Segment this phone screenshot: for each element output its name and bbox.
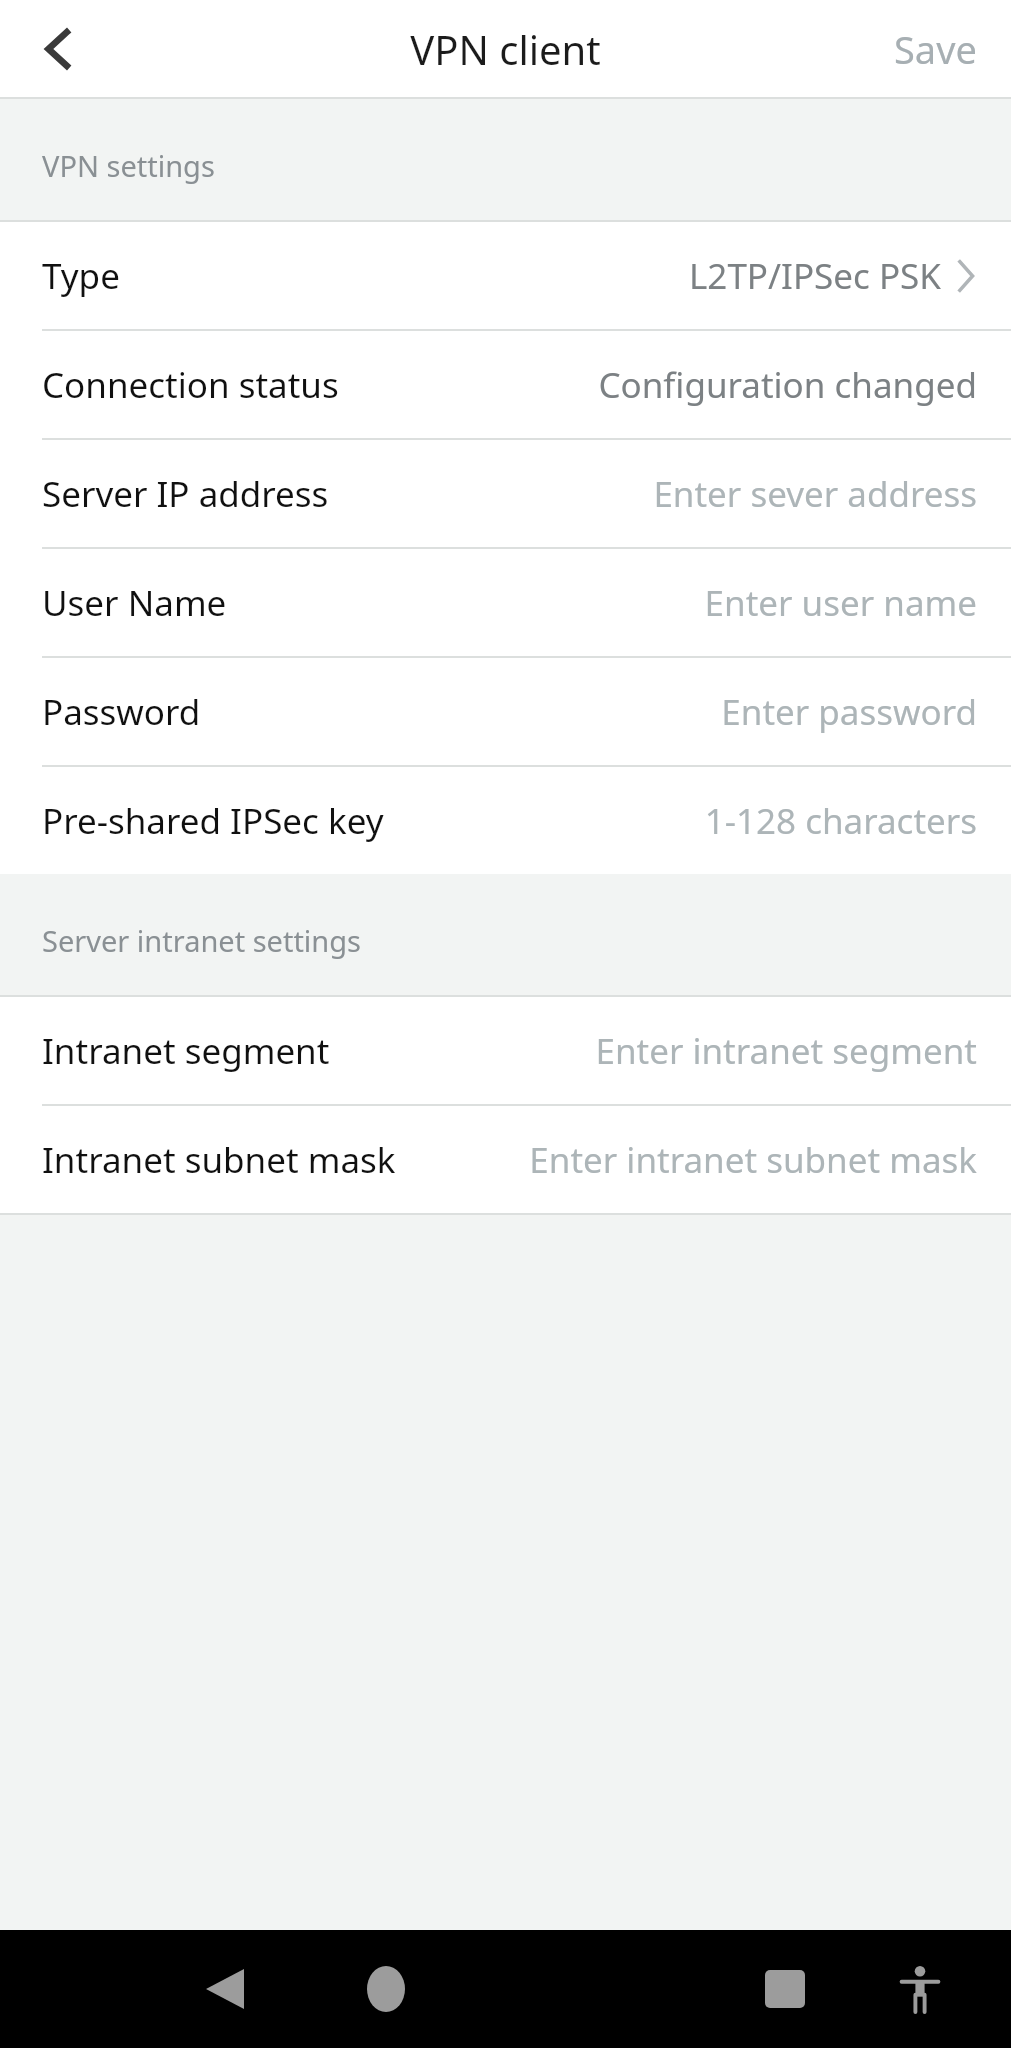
button[interactable]: Connection status <box>0 331 1011 438</box>
staticText: 1-128 characters <box>704 797 977 845</box>
staticText: Pre-shared IPSec key <box>42 797 384 845</box>
staticText: VPN settings <box>42 146 215 185</box>
staticText: Enter password <box>721 688 977 736</box>
button[interactable]: Intranet subnet mask <box>0 1106 1011 1213</box>
staticText: Enter intranet subnet mask <box>529 1136 977 1184</box>
button[interactable]: Password <box>0 658 1011 765</box>
staticText: Type <box>42 252 120 300</box>
staticText: Intranet subnet mask <box>42 1136 396 1184</box>
button[interactable]: Save <box>860 7 1011 91</box>
button[interactable]: Home <box>338 1941 434 2037</box>
button[interactable]: Recent apps <box>737 1941 833 2037</box>
staticText: Intranet segment <box>42 1027 330 1075</box>
staticText: User Name <box>42 579 227 627</box>
staticText: Enter sever address <box>653 470 977 518</box>
button[interactable]: Type <box>0 222 1011 329</box>
button[interactable]: User Name <box>0 549 1011 656</box>
button[interactable]: Accessibility <box>872 1941 968 2037</box>
button[interactable]: Pre-shared IPSec key <box>0 767 1011 874</box>
staticText: Server intranet settings <box>42 921 362 960</box>
staticText: Connection status <box>42 361 339 409</box>
staticText: Server IP address <box>42 470 329 518</box>
staticText: Enter intranet segment <box>595 1027 977 1075</box>
button[interactable]: Back <box>14 5 102 93</box>
staticText: Save <box>894 23 977 75</box>
staticText: VPN client <box>410 22 601 76</box>
button[interactable]: Server IP address <box>0 440 1011 547</box>
button[interactable]: Back <box>177 1941 273 2037</box>
staticText: Password <box>42 688 201 736</box>
staticText: Enter user name <box>704 579 977 627</box>
staticText: Configuration changed <box>598 361 977 409</box>
staticText: L2TP/IPSec PSK <box>689 252 941 300</box>
button[interactable]: Intranet segment <box>0 997 1011 1104</box>
